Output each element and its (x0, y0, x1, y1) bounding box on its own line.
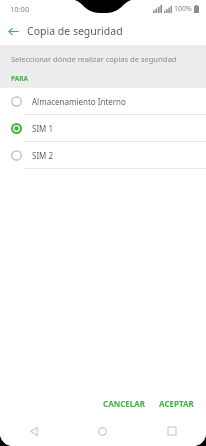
staticText: 100% (174, 4, 192, 14)
staticText: PARA (11, 74, 28, 83)
staticText: Almacenamiento Interno (32, 96, 126, 107)
button[interactable]: Recent apps (137, 416, 206, 446)
button[interactable]: Back (0, 17, 27, 45)
staticText: CANCELAR (103, 398, 146, 409)
button[interactable]: Home (68, 416, 137, 446)
staticText: SIM 2 (32, 150, 54, 161)
button[interactable]: CANCELAR (98, 393, 151, 414)
button[interactable]: SIM 2 (0, 142, 206, 168)
button[interactable]: Back (0, 416, 68, 446)
button[interactable]: SIM 1 (0, 115, 206, 141)
staticText: SIM 1 (32, 123, 54, 134)
staticText: Seleccionar dónde realizar copias de seg… (11, 54, 177, 64)
staticText: Copia de seguridad (27, 24, 123, 38)
staticText: 10:00 (10, 4, 30, 14)
button[interactable]: Almacenamiento Interno (0, 88, 206, 114)
staticText: ACEPTAR (159, 398, 194, 409)
button[interactable]: ACEPTAR (154, 393, 199, 414)
